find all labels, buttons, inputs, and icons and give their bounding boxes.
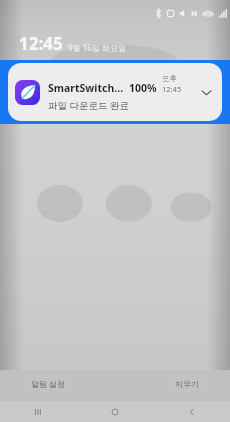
button[interactable]: SmartSwitch... — [8, 63, 222, 121]
staticText: 100% — [129, 81, 157, 95]
staticText: 지우기 — [175, 379, 199, 389]
staticText: 알림 설정 — [31, 378, 66, 389]
staticText: 오후 12:45 — [162, 73, 196, 94]
button[interactable]: Back — [153, 401, 230, 422]
button[interactable]: Expand notification — [196, 82, 216, 102]
staticText: 9월 16일 화요일 — [68, 42, 126, 53]
staticText: SmartSwitch... — [48, 81, 124, 95]
staticText: 파일 다운로드 완료 — [48, 99, 129, 112]
button[interactable]: 지우기 — [165, 375, 209, 392]
button[interactable]: 알림 설정 — [21, 375, 76, 392]
staticText: 12:45 — [19, 32, 63, 55]
button[interactable]: Home — [76, 401, 153, 422]
button[interactable]: Recent apps — [0, 401, 76, 422]
